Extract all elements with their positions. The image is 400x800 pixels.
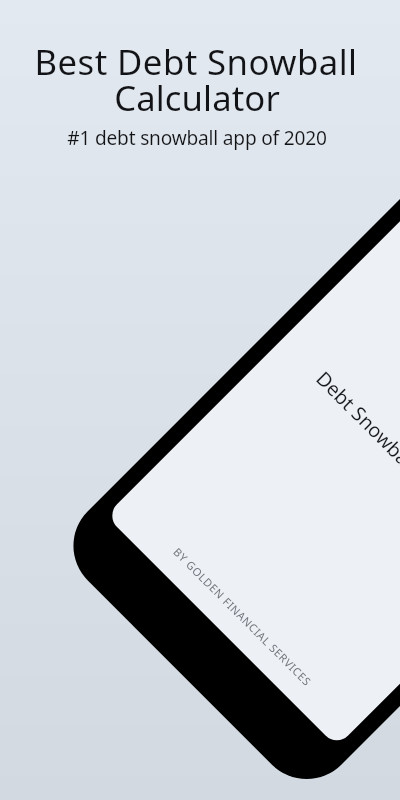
- staticText: Calculator: [0, 74, 397, 121]
- button[interactable]: Debt Snowball Calculator app screenshot: [0, 0, 400, 800]
- staticText: Best Debt Snowball: [0, 38, 396, 85]
- staticText: #1 debt snowball app of 2020: [0, 125, 397, 151]
